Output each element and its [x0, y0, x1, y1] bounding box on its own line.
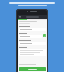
button[interactable] — [19, 47, 46, 56]
button[interactable] — [19, 67, 46, 71]
button[interactable] — [19, 40, 46, 45]
button[interactable]: Verified — [43, 34, 46, 37]
button[interactable]: Search — [26, 16, 39, 18]
button[interactable]: Menu — [19, 16, 21, 18]
button[interactable]: Verified — [19, 33, 46, 38]
button[interactable] — [19, 26, 46, 31]
button[interactable]: Search — [18, 15, 47, 19]
